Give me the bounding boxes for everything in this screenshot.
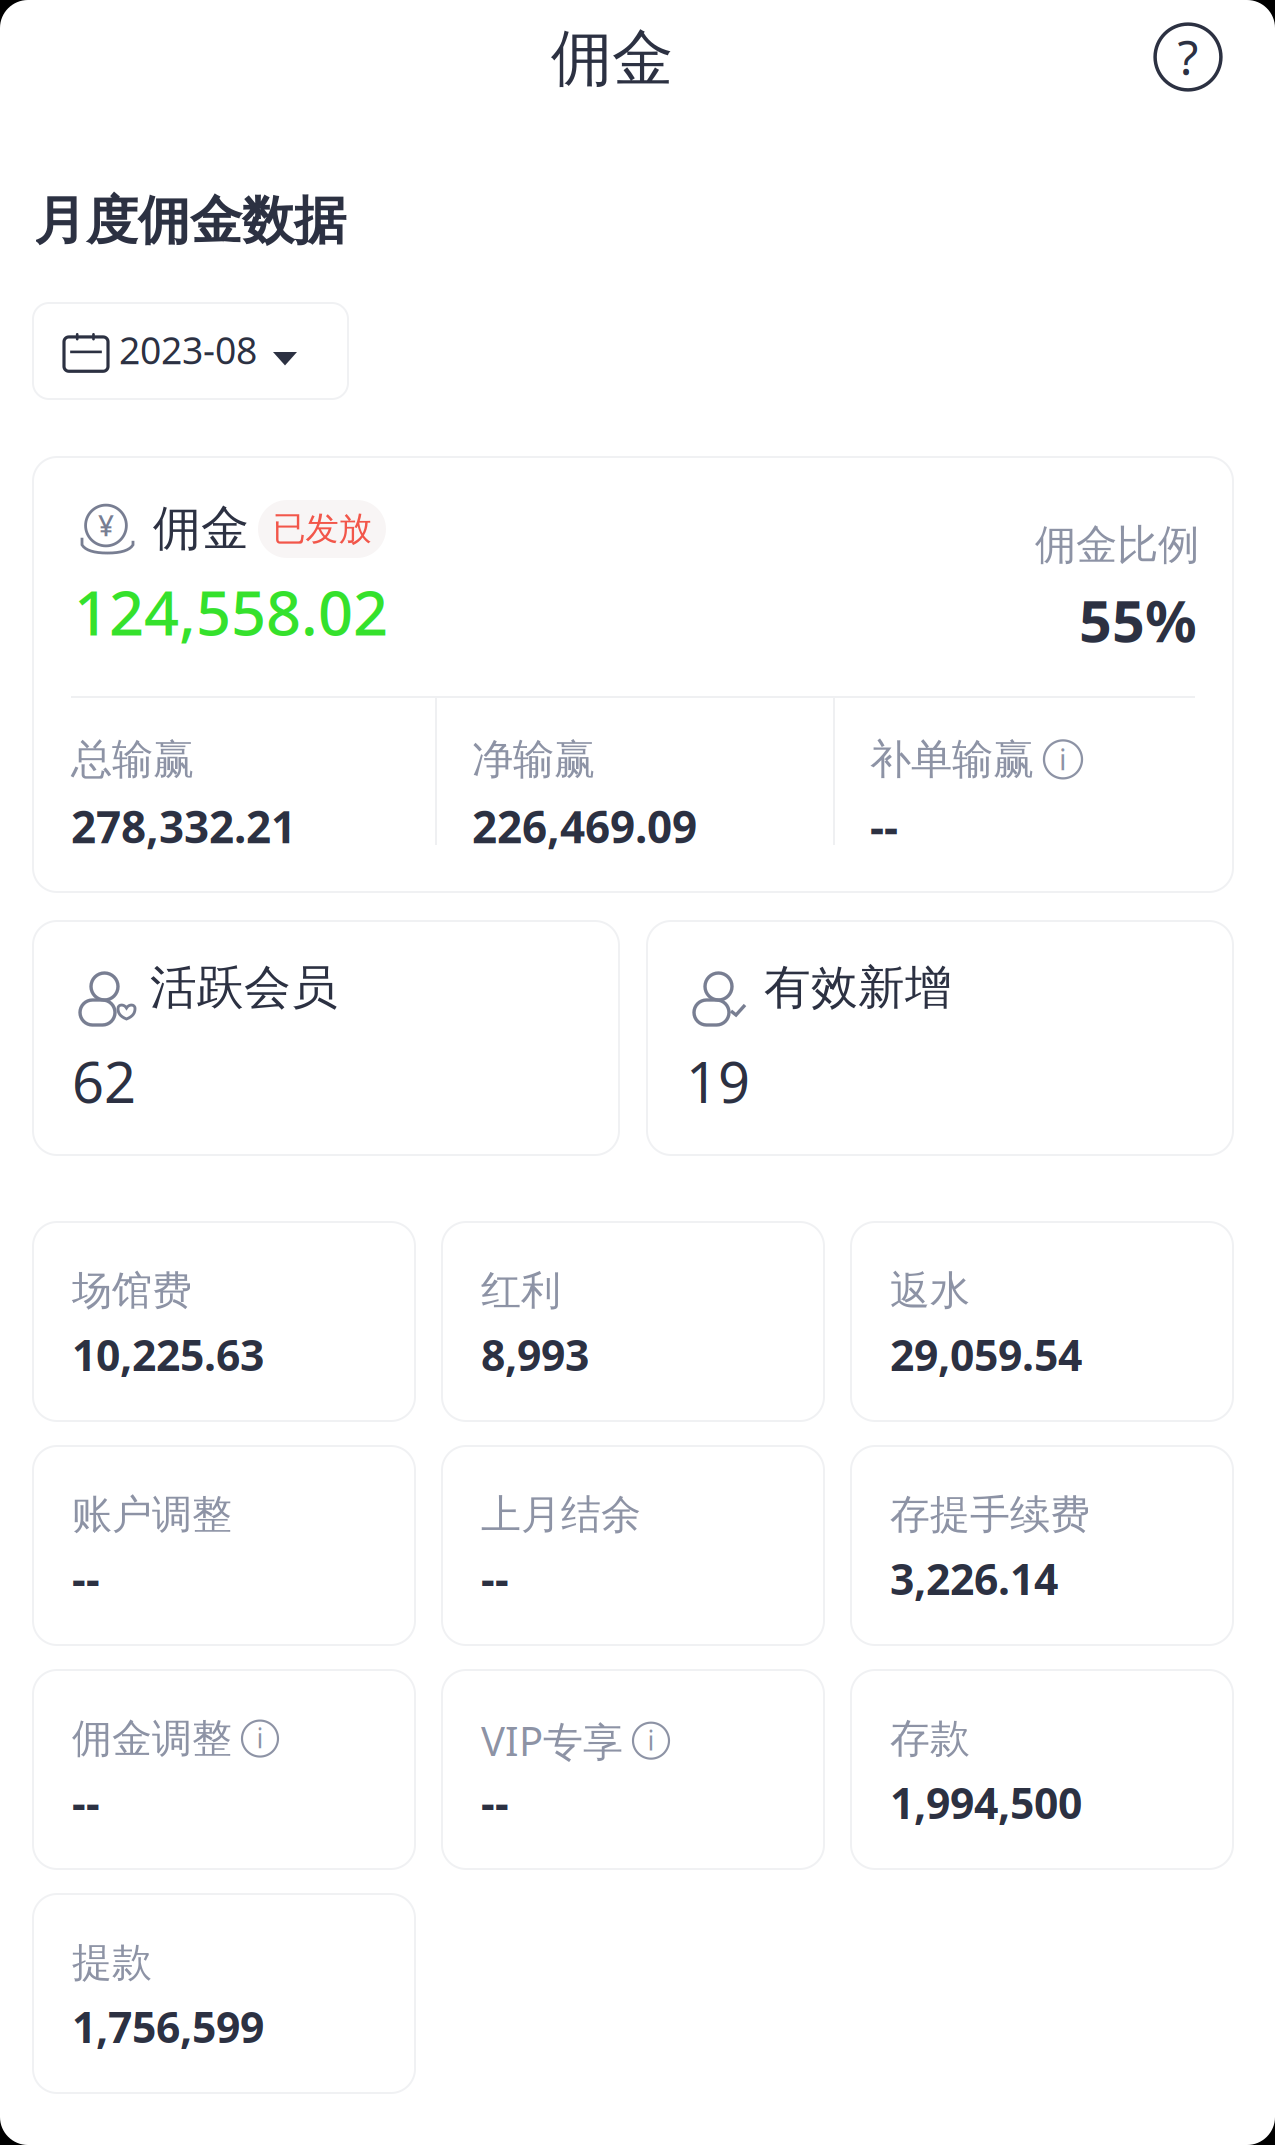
staticText: 活跃会员	[150, 959, 338, 1016]
button[interactable]: 红利	[442, 1222, 824, 1421]
button[interactable]: 场馆费	[33, 1222, 415, 1421]
button[interactable]: 2023-08	[33, 303, 348, 399]
staticText: 2023-08	[119, 325, 257, 375]
staticText: i	[1059, 739, 1067, 778]
staticText: 场馆费	[72, 1266, 192, 1315]
staticText: 226,469.09	[472, 797, 697, 855]
button[interactable]: 说明	[1044, 740, 1082, 778]
staticText: 补单输赢	[870, 734, 1034, 785]
staticText: 1,756,599	[72, 1998, 264, 2055]
staticText: 19	[686, 1044, 750, 1118]
staticText: --	[870, 797, 898, 855]
staticText: 62	[72, 1044, 136, 1118]
staticText: 提款	[72, 1938, 152, 1987]
button[interactable]: 上月结余	[442, 1446, 824, 1645]
staticText: 278,332.21	[71, 797, 296, 855]
button[interactable]: 帮助	[1153, 22, 1223, 92]
button[interactable]: 存提手续费	[851, 1446, 1233, 1645]
staticText: 红利	[481, 1266, 561, 1315]
staticText: 总输赢	[71, 734, 194, 785]
staticText: 3,226.14	[890, 1550, 1058, 1607]
button[interactable]: 存款	[851, 1670, 1233, 1869]
staticText: i	[647, 1722, 654, 1758]
staticText: 月度佣金数据	[34, 189, 346, 253]
staticText: 净输赢	[472, 734, 595, 785]
button[interactable]: 账户调整	[33, 1446, 415, 1645]
staticText: 29,059.54	[890, 1326, 1082, 1383]
staticText: 佣金	[551, 21, 673, 96]
staticText: 存提手续费	[890, 1490, 1090, 1539]
staticText: ?	[1177, 25, 1198, 88]
staticText: 返水	[890, 1266, 970, 1315]
staticText: 55%	[1079, 582, 1197, 658]
button[interactable]: 佣金调整	[33, 1670, 415, 1869]
staticText: 已发放	[272, 508, 371, 549]
staticText: 佣金比例	[1035, 520, 1199, 570]
staticText: 10,225.63	[72, 1326, 264, 1383]
staticText: i	[256, 1720, 263, 1756]
staticText: --	[72, 1550, 100, 1607]
staticText: --	[72, 1774, 100, 1831]
staticText: 佣金调整	[72, 1714, 232, 1763]
staticText: 上月结余	[481, 1490, 641, 1539]
staticText: 8,993	[481, 1326, 589, 1383]
staticText: ¥	[98, 507, 114, 544]
button[interactable]: 活跃会员	[33, 921, 619, 1155]
staticText: VIP专享	[481, 1714, 623, 1767]
staticText: --	[481, 1550, 509, 1607]
staticText: 有效新增	[764, 959, 952, 1016]
button[interactable]: VIP专享	[442, 1670, 824, 1869]
button[interactable]: 返水	[851, 1222, 1233, 1421]
staticText: 存款	[890, 1714, 970, 1763]
button[interactable]: 提款	[33, 1894, 415, 2093]
staticText: 佣金	[153, 499, 249, 558]
staticText: 账户调整	[72, 1490, 232, 1539]
button[interactable]: 有效新增	[647, 921, 1233, 1155]
staticText: 124,558.02	[74, 571, 388, 652]
staticText: 1,994,500	[890, 1774, 1082, 1831]
staticText: --	[481, 1774, 509, 1831]
